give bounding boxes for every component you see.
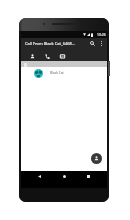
button[interactable]: Contacts [26,49,38,61]
button[interactable]: Call history [41,49,53,61]
button[interactable]: Search [87,38,97,49]
button[interactable]: Add contact [91,153,102,164]
button[interactable]: More options [97,38,105,49]
button[interactable]: Recents [83,171,94,188]
staticText: Call From Black Cat_6468... [25,41,76,46]
button[interactable]: Back [34,171,45,188]
button[interactable]: Messages [56,49,68,61]
staticText: Black Cat [50,71,64,75]
button[interactable]: Home [59,171,70,188]
button[interactable]: Black Cat [21,67,107,79]
staticText: 10:26 [97,32,106,37]
